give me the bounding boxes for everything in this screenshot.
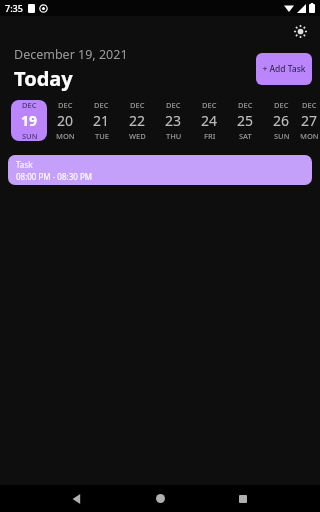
button[interactable]: Recent apps [226, 485, 260, 512]
staticText: 26 [273, 111, 290, 130]
staticText: DEC [202, 100, 217, 110]
staticText: DEC [274, 100, 289, 110]
staticText: 20 [57, 111, 74, 130]
staticText: THU [166, 131, 182, 141]
staticText: DEC [130, 100, 145, 110]
staticText: SUN [274, 131, 290, 141]
staticText: MON [300, 131, 319, 141]
staticText: DEC [166, 100, 181, 110]
staticText: DEC [58, 100, 73, 110]
button[interactable]: DEC [263, 100, 299, 141]
button[interactable]: DEC [155, 100, 191, 141]
staticText: DEC [302, 100, 317, 110]
button[interactable]: DEC [11, 100, 47, 141]
staticText: 23 [165, 111, 182, 130]
staticText: FRI [204, 131, 216, 141]
staticText: DEC [238, 100, 253, 110]
button[interactable]: DEC [227, 100, 263, 141]
button[interactable]: DEC [191, 100, 227, 141]
staticText: 08:00 PM - 08:30 PM [16, 171, 92, 182]
button[interactable]: Back [60, 485, 94, 512]
button[interactable]: DEC [47, 100, 83, 141]
staticText: 7:35 [5, 2, 23, 14]
staticText: TUE [95, 131, 109, 141]
staticText: 25 [237, 111, 254, 130]
staticText: DEC [94, 100, 109, 110]
staticText: 22 [129, 111, 146, 130]
staticText: Task [16, 159, 33, 170]
staticText: December 19, 2021 [14, 46, 128, 63]
button[interactable]: DEC [83, 100, 119, 141]
button[interactable]: Task [8, 155, 312, 185]
button[interactable]: DEC [299, 100, 320, 141]
staticText: 19 [21, 111, 38, 130]
staticText: MON [56, 131, 75, 141]
staticText: WED [129, 131, 146, 141]
staticText: 27 [301, 111, 318, 130]
staticText: SAT [239, 131, 252, 141]
staticText: SUN [22, 131, 38, 141]
staticText: 21 [93, 111, 110, 130]
button[interactable]: Toggle theme [288, 19, 312, 43]
button[interactable]: DEC [119, 100, 155, 141]
staticText: 24 [201, 111, 218, 130]
staticText: + Add Task [262, 63, 306, 75]
staticText: DEC [22, 100, 37, 110]
button[interactable]: + Add Task [256, 53, 312, 85]
button[interactable]: Home [143, 485, 177, 512]
staticText: Today [14, 65, 73, 92]
